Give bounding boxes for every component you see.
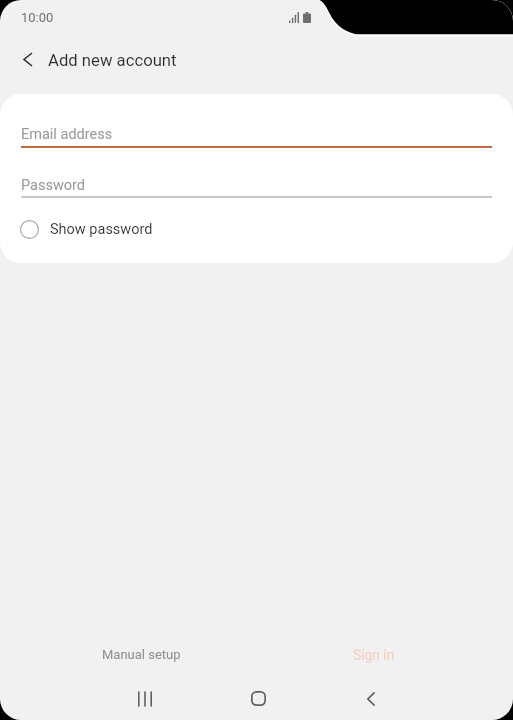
button[interactable]: Email address (21, 116, 492, 148)
button[interactable]: Navigate up (10, 41, 46, 77)
staticText: Add new account (48, 51, 177, 71)
staticText: Email address (21, 126, 113, 143)
button[interactable]: Home (234, 677, 282, 720)
button[interactable]: Show password (20, 213, 153, 245)
staticText: Manual setup (102, 647, 181, 662)
button[interactable]: Back (347, 677, 395, 720)
button[interactable]: Manual setup (80, 638, 203, 671)
button[interactable]: Recents (121, 677, 169, 720)
staticText: Sign in (353, 647, 395, 663)
staticText: 10:00 (21, 10, 54, 25)
button[interactable]: Sign in (331, 638, 417, 672)
staticText: Password (21, 177, 86, 194)
button[interactable]: Password (21, 167, 492, 199)
staticText: Show password (50, 221, 153, 238)
